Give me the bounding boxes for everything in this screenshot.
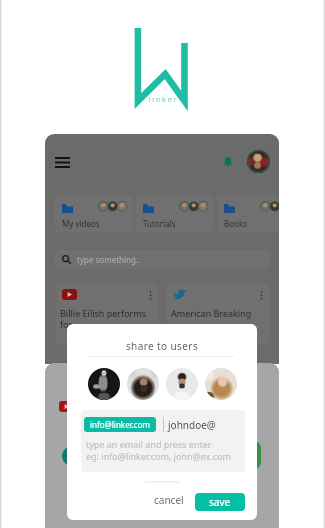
staticText: save (209, 495, 231, 509)
staticText: Tutorials (143, 218, 176, 229)
button[interactable]: cancel (147, 489, 191, 511)
button[interactable]: User (88, 368, 120, 400)
button[interactable]: User (166, 368, 198, 400)
staticText: share to users (67, 339, 257, 353)
staticText: info@linker.com (90, 419, 150, 430)
staticText: for... (60, 318, 79, 330)
staticText: My videos (62, 218, 100, 229)
button[interactable]: type something.. (55, 250, 270, 269)
staticText: johndoe@ (168, 418, 216, 432)
button[interactable]: American Breaking (167, 284, 269, 344)
button[interactable]: My videos (55, 195, 132, 233)
button[interactable]: Billie Eilish performs (56, 284, 158, 344)
staticText: type something.. (77, 254, 141, 265)
staticText: cancel (154, 493, 184, 507)
button[interactable]: Notifications (219, 152, 237, 170)
button[interactable]: Books (217, 195, 279, 233)
button[interactable]: User (127, 368, 159, 400)
staticText: Books (224, 218, 247, 229)
button[interactable]: User (205, 368, 237, 400)
staticText: l i n k e r (128, 95, 197, 105)
staticText: type an email and press enter (86, 438, 212, 450)
button[interactable]: info@linker.com (84, 417, 156, 432)
button[interactable]: Profile (247, 150, 270, 173)
staticText: Billie Eilish performs (60, 307, 147, 319)
button[interactable]: Add (62, 446, 82, 466)
button[interactable]: Open navigation menu (51, 151, 73, 173)
button[interactable]: Tutorials (136, 195, 213, 233)
staticText: American Breaking (171, 307, 252, 319)
staticText: eg: info@linker.com, john@ex.com (86, 450, 231, 462)
button[interactable]: info@linker.com (81, 410, 245, 472)
button[interactable]: save (195, 493, 245, 511)
staticText: ... (171, 318, 179, 330)
